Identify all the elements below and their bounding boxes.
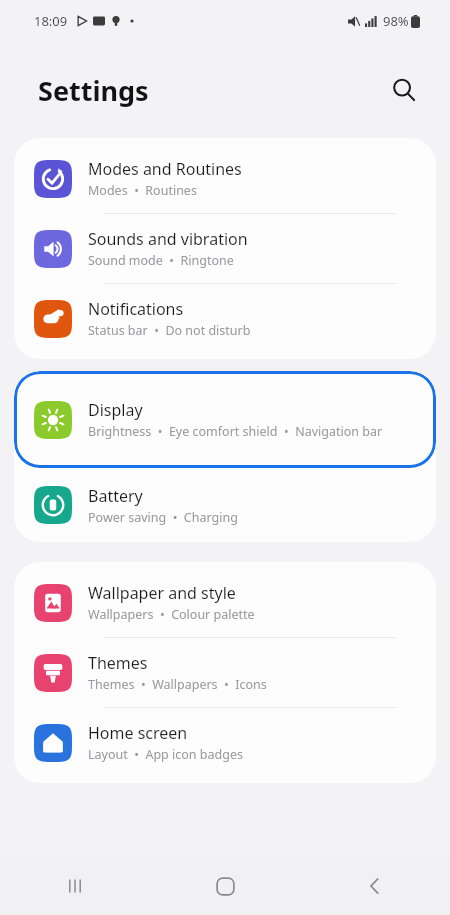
button[interactable]: Home — [150, 857, 300, 915]
staticText: Brightness • Eye comfort shield • Naviga… — [88, 423, 383, 440]
button[interactable]: Battery — [14, 468, 436, 542]
button[interactable]: Search — [384, 70, 424, 110]
staticText: 18:09 — [34, 12, 68, 30]
staticText: Themes — [88, 652, 148, 674]
staticText: Wallpapers • Colour palette — [88, 606, 255, 623]
staticText: Power saving • Charging — [88, 509, 238, 526]
staticText: Home screen — [88, 722, 188, 744]
button[interactable]: Notifications — [14, 284, 436, 353]
staticText: Battery — [88, 485, 143, 507]
button[interactable]: Modes and Routines — [14, 144, 436, 213]
staticText: Modes and Routines — [88, 158, 242, 180]
staticText: Sound mode • Ringtone — [88, 252, 234, 269]
staticText: 98% — [383, 12, 409, 30]
button[interactable]: Display — [14, 371, 436, 468]
staticText: Layout • App icon badges — [88, 746, 243, 763]
staticText: Modes • Routines — [88, 182, 197, 199]
staticText: Wallpaper and style — [88, 582, 236, 604]
staticText: Notifications — [88, 298, 184, 320]
staticText: Display — [88, 399, 143, 421]
button[interactable]: Home screen — [14, 708, 436, 777]
button[interactable]: Wallpaper and style — [14, 568, 436, 637]
button[interactable]: Sounds and vibration — [14, 214, 436, 283]
staticText: Status bar • Do not disturb — [88, 322, 251, 339]
button[interactable]: Themes — [14, 638, 436, 707]
button[interactable]: Back — [300, 857, 450, 915]
staticText: Settings — [38, 72, 149, 109]
button[interactable]: Recents — [0, 857, 150, 915]
staticText: Themes • Wallpapers • Icons — [88, 676, 267, 693]
staticText: Sounds and vibration — [88, 228, 248, 250]
